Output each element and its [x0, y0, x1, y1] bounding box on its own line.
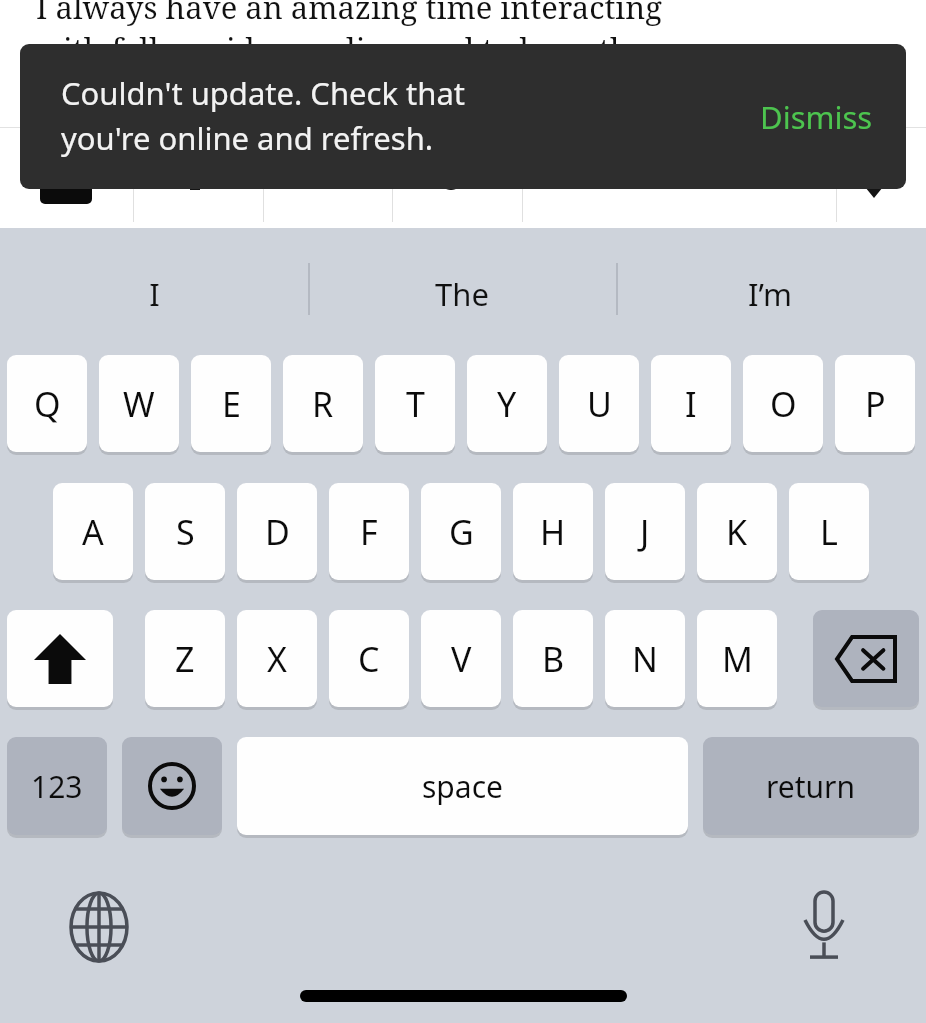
- staticText: T: [406, 381, 425, 427]
- staticText: Y: [497, 381, 517, 427]
- button[interactable]: S: [145, 483, 225, 580]
- button[interactable]: E: [191, 355, 271, 452]
- staticText: V: [451, 636, 472, 682]
- staticText: N: [632, 636, 658, 682]
- staticText: U: [587, 381, 612, 427]
- staticText: I: [149, 273, 160, 315]
- button[interactable]: X: [237, 610, 317, 707]
- button[interactable]: Couldn't update. Check that you're onlin…: [20, 44, 906, 189]
- button[interactable]: Voice input: [780, 883, 868, 971]
- staticText: E: [222, 381, 241, 427]
- button[interactable]: W: [99, 355, 179, 452]
- staticText: I always have an amazing time interactin…: [36, 0, 662, 28]
- button[interactable]: Collapse toolbar: [850, 168, 898, 212]
- staticText: J: [640, 509, 650, 555]
- staticText: H: [540, 509, 566, 555]
- button[interactable]: D: [237, 483, 317, 580]
- button[interactable]: V: [421, 610, 501, 707]
- staticText: L: [820, 509, 838, 555]
- staticText: The: [435, 273, 489, 315]
- button[interactable]: R: [283, 355, 363, 452]
- button[interactable]: Text style: [40, 174, 92, 204]
- staticText: I: [685, 381, 697, 427]
- button[interactable]: T: [375, 355, 455, 452]
- button[interactable]: Change keyboard language: [55, 883, 143, 971]
- staticText: S: [176, 509, 195, 555]
- button[interactable]: K: [697, 483, 777, 580]
- button[interactable]: space: [237, 737, 688, 835]
- staticText: P: [865, 381, 886, 427]
- staticText: with fellow riders online, and to have t…: [36, 28, 647, 70]
- staticText: C: [358, 636, 380, 682]
- button[interactable]: P: [835, 355, 915, 452]
- staticText: G: [449, 509, 474, 555]
- button[interactable]: The: [322, 263, 602, 325]
- staticText: B: [542, 636, 565, 682]
- button[interactable]: G: [421, 483, 501, 580]
- staticText: space: [422, 766, 503, 807]
- button[interactable]: I’m: [630, 263, 910, 325]
- staticText: Q: [34, 381, 61, 427]
- button[interactable]: Dismiss: [736, 77, 896, 157]
- button[interactable]: Q: [7, 355, 87, 452]
- button[interactable]: Z: [145, 610, 225, 707]
- button[interactable]: 123: [7, 737, 107, 835]
- staticText: F: [360, 509, 378, 555]
- button[interactable]: I: [14, 263, 294, 325]
- staticText: A: [82, 509, 104, 555]
- button[interactable]: O: [743, 355, 823, 452]
- button[interactable]: I: [651, 355, 731, 452]
- button[interactable]: Emoji: [122, 737, 222, 835]
- button[interactable]: Link: [440, 174, 462, 190]
- staticText: Z: [175, 636, 195, 682]
- staticText: R: [312, 381, 334, 427]
- staticText: K: [726, 509, 748, 555]
- staticText: return: [766, 766, 856, 807]
- staticText: Couldn't update. Check that you're onlin…: [61, 72, 466, 159]
- button[interactable]: C: [329, 610, 409, 707]
- button[interactable]: B: [513, 610, 593, 707]
- button[interactable]: U: [559, 355, 639, 452]
- staticText: 123: [31, 766, 83, 807]
- button[interactable]: M: [697, 610, 777, 707]
- staticText: W: [123, 381, 155, 427]
- button[interactable]: J: [605, 483, 685, 580]
- button[interactable]: Bold: [190, 174, 200, 190]
- staticText: O: [770, 381, 797, 427]
- button[interactable]: Backspace: [813, 610, 919, 707]
- button[interactable]: H: [513, 483, 593, 580]
- staticText: Dismiss: [760, 96, 873, 138]
- button[interactable]: F: [329, 483, 409, 580]
- staticText: M: [722, 636, 753, 682]
- button[interactable]: Y: [467, 355, 547, 452]
- staticText: X: [267, 636, 287, 682]
- staticText: D: [265, 509, 290, 555]
- button[interactable]: A: [53, 483, 133, 580]
- button[interactable]: return: [703, 737, 919, 835]
- button[interactable]: Shift: [7, 610, 113, 707]
- button[interactable]: N: [605, 610, 685, 707]
- button[interactable]: L: [789, 483, 869, 580]
- staticText: I’m: [748, 273, 792, 315]
